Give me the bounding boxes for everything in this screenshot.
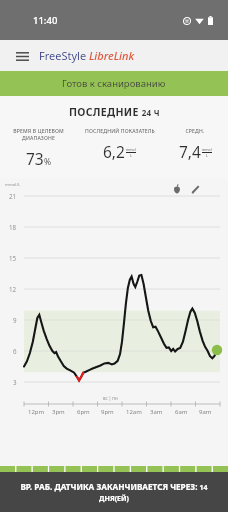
- button[interactable]: Add note: [189, 183, 201, 195]
- staticText: L: [206, 153, 208, 158]
- button[interactable]: Open navigation menu: [10, 44, 34, 68]
- staticText: 11:40: [33, 14, 58, 27]
- button[interactable]: ПОСЛЕДНИЙ ПОКАЗАТЕЛЬ: [77, 128, 162, 162]
- button[interactable]: ВР. РАБ. ДАТЧИКА ЗАКАНЧИВАЕТСЯ ЧЕРЕЗ: 14…: [0, 472, 228, 512]
- staticText: 18: [9, 223, 17, 231]
- staticText: L: [130, 153, 132, 158]
- staticText: 12pm: [28, 408, 45, 416]
- staticText: mmol/L: [5, 182, 21, 188]
- staticText: 3: [13, 378, 17, 386]
- staticText: 9am: [199, 408, 212, 416]
- staticText: 3pm: [52, 408, 65, 416]
- staticText: 6am: [175, 408, 188, 416]
- staticText: 12am: [126, 408, 142, 416]
- button[interactable]: Add food note: [171, 183, 183, 195]
- staticText: 12: [9, 285, 17, 293]
- staticText: 21: [9, 192, 17, 200]
- staticText: 9pm: [101, 408, 114, 416]
- staticText: FreeStyle LibreLink: [39, 48, 135, 63]
- staticText: 7,4: [179, 141, 201, 162]
- button[interactable]: СРЕДН.: [162, 128, 228, 162]
- button[interactable]: Готов к сканированию: [0, 71, 228, 96]
- staticText: Готов к сканированию: [62, 77, 166, 90]
- staticText: ВРЕМЯ В ЦЕЛЕВОМ ДИАПАЗОНЕ: [13, 128, 64, 142]
- staticText: 6pm: [77, 408, 90, 416]
- staticText: ВР. РАБ. ДАТЧИКА ЗАКАНЧИВАЕТСЯ ЧЕРЕЗ: 14…: [6, 481, 222, 503]
- staticText: mmol: [126, 147, 136, 152]
- staticText: %: [44, 156, 52, 168]
- staticText: вс | пн: [103, 395, 118, 401]
- staticText: 15: [9, 254, 17, 262]
- staticText: 3am: [150, 408, 163, 416]
- staticText: 6,2: [103, 141, 125, 162]
- staticText: mmol: [202, 147, 212, 152]
- staticText: 73: [26, 148, 44, 169]
- staticText: 6: [13, 347, 17, 355]
- button[interactable]: ВРЕМЯ В ЦЕЛЕВОМ ДИАПАЗОНЕ: [0, 128, 77, 169]
- staticText: ПОСЛЕДНИЙ ПОКАЗАТЕЛЬ: [85, 128, 155, 135]
- staticText: 9: [13, 316, 17, 324]
- staticText: СРЕДН.: [185, 128, 205, 135]
- staticText: ПОСЛЕДНИЕ 24 Ч: [69, 105, 160, 119]
